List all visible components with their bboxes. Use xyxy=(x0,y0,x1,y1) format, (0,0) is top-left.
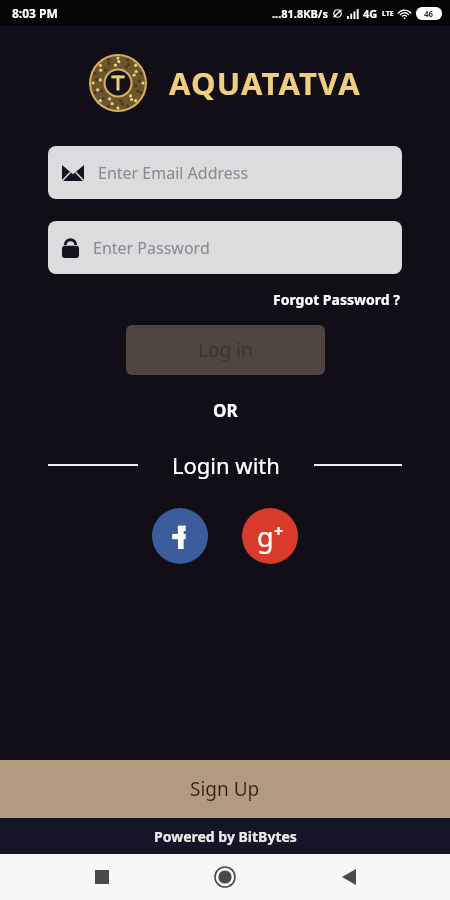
staticText: LTE xyxy=(382,9,394,19)
staticText: 8:03 PM xyxy=(12,5,58,21)
button[interactable]: Enter Email Address xyxy=(48,146,402,199)
button[interactable]: Recent apps xyxy=(80,855,124,899)
staticText: Login with xyxy=(172,450,280,480)
button[interactable]: Back xyxy=(327,855,371,899)
staticText: ...81.8KB/s xyxy=(272,6,328,21)
button[interactable]: Login with Facebook xyxy=(152,508,208,564)
staticText: 4G xyxy=(363,6,378,21)
staticText: Enter Password xyxy=(93,237,210,259)
staticText: 46 xyxy=(424,8,434,19)
staticText: Powered by BitBytes xyxy=(154,827,297,846)
staticText: Log in xyxy=(198,337,253,363)
button[interactable]: Enter Password xyxy=(48,221,402,274)
staticText: + xyxy=(274,520,284,542)
staticText: AQUATATVA xyxy=(169,62,361,104)
button[interactable]: Home xyxy=(203,855,247,899)
staticText: OR xyxy=(213,399,238,422)
staticText: Enter Email Address xyxy=(98,162,249,184)
staticText: Forgot Password ? xyxy=(273,290,400,309)
button[interactable]: Log in xyxy=(126,325,325,375)
staticText: Sign Up xyxy=(190,776,260,802)
button[interactable]: Login with Google Plus xyxy=(242,508,298,564)
staticText: g xyxy=(257,518,274,555)
button[interactable]: Sign Up xyxy=(0,760,450,818)
button[interactable]: Forgot Password ? xyxy=(271,288,402,311)
